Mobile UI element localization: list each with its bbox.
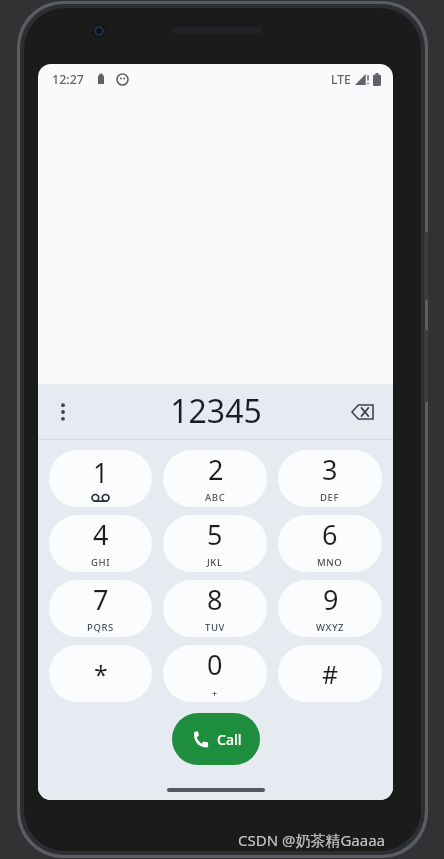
staticText: DEF <box>320 491 340 504</box>
button[interactable]: # <box>278 645 382 702</box>
button[interactable]: 1 <box>49 450 152 507</box>
button[interactable]: * <box>49 645 152 702</box>
button[interactable]: 2 <box>163 450 267 507</box>
button[interactable]: Backspace <box>345 395 379 429</box>
button[interactable]: 6 <box>278 515 382 572</box>
staticText: TUV <box>205 621 225 634</box>
staticText: + <box>212 687 218 699</box>
button[interactable]: More options <box>49 398 77 426</box>
button[interactable]: Call <box>172 713 260 765</box>
staticText: 6 <box>322 516 338 553</box>
staticText: GHI <box>91 556 111 569</box>
staticText: PQRS <box>87 621 114 634</box>
staticText: 0 <box>207 646 223 683</box>
staticText: 3 <box>322 451 338 488</box>
staticText: LTE <box>331 71 351 87</box>
staticText: 2 <box>208 451 224 488</box>
staticText: 5 <box>207 516 223 553</box>
button[interactable]: 4 <box>49 515 152 572</box>
staticText: WXYZ <box>316 621 345 634</box>
staticText: 1 <box>93 454 109 491</box>
staticText: CSDN @奶茶精Gaaaa <box>238 830 386 850</box>
staticText: 9 <box>323 581 339 618</box>
button[interactable]: 0 <box>163 645 267 702</box>
staticText: 8 <box>207 581 223 618</box>
button[interactable]: 9 <box>278 580 382 637</box>
button[interactable]: 5 <box>163 515 267 572</box>
staticText: 12:27 <box>52 71 85 88</box>
staticText: 12345 <box>170 389 262 433</box>
button[interactable]: 3 <box>278 450 382 507</box>
staticText: ABC <box>205 491 226 504</box>
staticText: MNO <box>317 556 343 569</box>
staticText: # <box>322 657 339 691</box>
staticText: Call <box>217 730 242 749</box>
staticText: 4 <box>93 516 109 553</box>
button[interactable]: 8 <box>163 580 267 637</box>
staticText: * <box>94 657 108 691</box>
staticText: 7 <box>93 581 109 618</box>
staticText: JKL <box>207 556 223 569</box>
button[interactable]: 7 <box>49 580 152 637</box>
